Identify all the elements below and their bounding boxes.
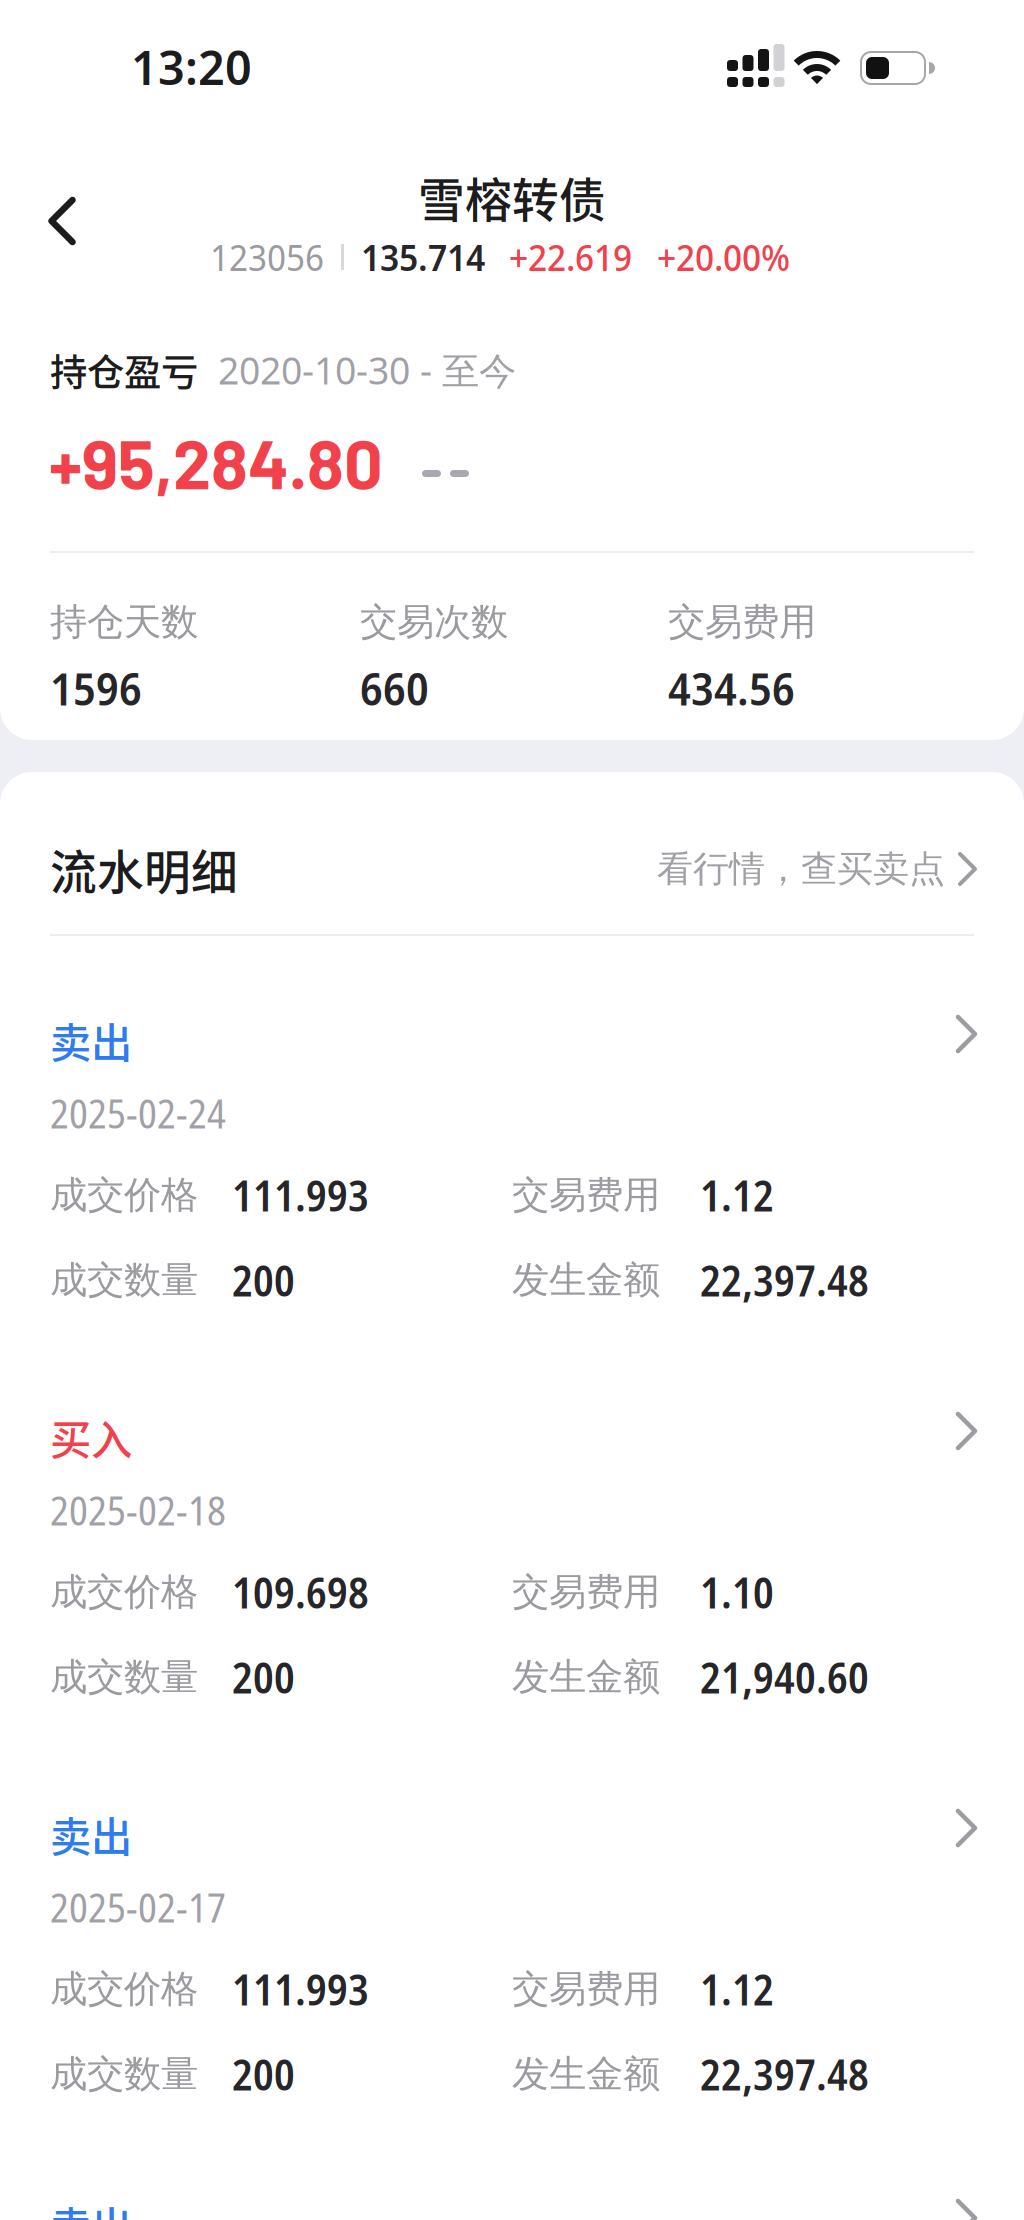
staticText: 卖出: [50, 1010, 132, 1070]
staticText: 成交价格: [50, 1966, 198, 2012]
staticText: 雪榕转债: [418, 163, 606, 231]
staticText: 交易费用: [512, 1569, 660, 1615]
staticText: 2025-02-24: [50, 1086, 226, 1140]
staticText: 成交数量: [50, 2051, 198, 2097]
staticText: 2025-02-18: [50, 1483, 226, 1537]
staticText: 1.12: [700, 1166, 774, 1224]
staticText: 111.993: [232, 1166, 369, 1224]
staticText: 交易费用: [512, 1966, 660, 2012]
staticText: 交易费用: [668, 599, 816, 645]
staticText: 2020-10-30 - 至今: [198, 345, 516, 395]
button[interactable]: 卖出 2025-02-17: [0, 1776, 1024, 2136]
staticText: 200: [232, 2045, 295, 2103]
staticText: 434.56: [668, 657, 795, 719]
staticText: 111.993: [232, 1960, 369, 2018]
staticText: 成交价格: [50, 1569, 198, 1615]
staticText: 持仓天数: [50, 599, 198, 645]
button[interactable]: Back: [0, 166, 124, 276]
staticText: 660: [360, 657, 429, 719]
staticText: 1596: [50, 657, 142, 719]
staticText: 21,940.60: [700, 1648, 869, 1706]
staticText: 2025-02-17: [50, 1880, 226, 1934]
staticText: +20.00%: [657, 232, 790, 281]
staticText: 22,397.48: [700, 1251, 869, 1309]
staticText: 200: [232, 1648, 295, 1706]
staticText: 123056: [210, 232, 324, 281]
button[interactable]: 卖出 2025-02-10: [0, 2166, 1024, 2220]
staticText: 看行情，查买卖点: [657, 847, 945, 891]
staticText: +22.619: [509, 232, 632, 281]
staticText: 买入: [50, 1407, 132, 1467]
staticText: 发生金额: [512, 1257, 660, 1303]
staticText: 卖出: [50, 2194, 132, 2220]
staticText: 卖出: [50, 1804, 132, 1864]
button[interactable]: 看行情，查买卖点: [644, 831, 984, 907]
staticText: 22,397.48: [700, 2045, 869, 2103]
staticText: 1.12: [700, 1960, 774, 2018]
staticText: 109.698: [232, 1563, 369, 1621]
button[interactable]: 卖出 2025-02-24: [0, 982, 1024, 1342]
staticText: 交易费用: [512, 1172, 660, 1218]
staticText: 发生金额: [512, 1654, 660, 1700]
staticText: 交易次数: [360, 599, 508, 645]
staticText: 200: [232, 1251, 295, 1309]
staticText: 13:20: [131, 36, 252, 98]
staticText: 成交价格: [50, 1172, 198, 1218]
staticText: 发生金额: [512, 2051, 660, 2097]
staticText: 持仓盈亏: [50, 343, 198, 397]
staticText: +95,284.80: [49, 421, 383, 503]
staticText: 流水明细: [50, 835, 238, 903]
staticText: 成交数量: [50, 1654, 198, 1700]
staticText: 成交数量: [50, 1257, 198, 1303]
button[interactable]: 买入 2025-02-18: [0, 1379, 1024, 1739]
staticText: 135.714: [361, 232, 485, 281]
staticText: 1.10: [700, 1563, 774, 1621]
